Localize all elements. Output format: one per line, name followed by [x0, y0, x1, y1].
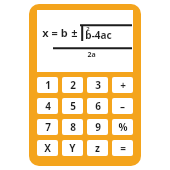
button[interactable]: Plus	[112, 77, 133, 93]
button[interactable]: Y	[62, 140, 83, 156]
staticText: 6	[95, 99, 101, 113]
staticText: 8	[70, 120, 76, 134]
staticText: Y	[69, 141, 76, 155]
staticText: ±	[71, 25, 78, 40]
staticText: +	[120, 78, 126, 92]
staticText: z	[95, 141, 100, 155]
staticText: 4	[45, 99, 51, 113]
button[interactable]: Minus	[112, 98, 133, 114]
button[interactable]: 6	[87, 98, 108, 114]
staticText: X	[44, 141, 51, 155]
staticText: 5	[70, 99, 76, 113]
button[interactable]: 8	[62, 119, 83, 135]
staticText: 2a	[87, 50, 96, 60]
staticText: 1	[45, 78, 51, 92]
button[interactable]: Equals	[112, 140, 133, 156]
staticText: –	[120, 99, 125, 113]
button[interactable]: 9	[87, 119, 108, 135]
staticText: x = b	[42, 25, 68, 40]
button[interactable]: Formula display	[37, 10, 133, 72]
button[interactable]: Percent	[112, 119, 133, 135]
button[interactable]: z	[87, 140, 108, 156]
staticText: 2	[70, 78, 76, 92]
staticText: 9	[95, 120, 101, 134]
button[interactable]: 7	[37, 119, 58, 135]
staticText: =	[120, 141, 126, 155]
button[interactable]: X	[37, 140, 58, 156]
staticText: %	[118, 120, 128, 134]
staticText: 2	[86, 25, 90, 33]
button[interactable]: 3	[87, 77, 108, 93]
staticText: 7	[45, 120, 51, 134]
button[interactable]: 5	[62, 98, 83, 114]
staticText: b-4ac	[85, 28, 112, 42]
button[interactable]: 1	[37, 77, 58, 93]
button[interactable]: 4	[37, 98, 58, 114]
button[interactable]: 2	[62, 77, 83, 93]
staticText: 3	[95, 78, 101, 92]
